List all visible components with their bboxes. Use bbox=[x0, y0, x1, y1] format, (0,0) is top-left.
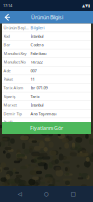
staticText: Profil bbox=[3, 119, 12, 125]
staticText: Ürünün Bilgisi bbox=[31, 14, 63, 21]
staticText: Tarix Alom bbox=[3, 85, 23, 90]
button[interactable]: Fiyatlarını Gör bbox=[2, 122, 91, 134]
staticText: Codera bbox=[30, 42, 43, 47]
button[interactable]: Back bbox=[1, 11, 13, 23]
button[interactable]: Home bbox=[39, 187, 53, 201]
staticText: Fiyatlarını Gör bbox=[30, 124, 63, 132]
staticText: Ana Taşınması bbox=[30, 111, 56, 116]
staticText: ○ bbox=[44, 191, 49, 197]
staticText: Manufact.Key bbox=[3, 51, 26, 56]
staticText: Manufact.No bbox=[3, 59, 25, 65]
staticText: Ürünün Başlığı bbox=[3, 25, 28, 30]
staticText: 17:14 bbox=[3, 3, 12, 8]
staticText: Itır 071.09 bbox=[30, 85, 47, 90]
staticText: □ bbox=[71, 191, 76, 197]
staticText: Demir Tip bbox=[3, 111, 21, 116]
staticText: Marxet bbox=[3, 102, 16, 108]
staticText: Paket bbox=[3, 76, 12, 82]
button[interactable]: Recent apps bbox=[66, 187, 80, 201]
staticText: Sipariş bbox=[3, 94, 15, 99]
staticText: ◁ bbox=[18, 191, 22, 197]
staticText: 147322 bbox=[30, 59, 42, 65]
staticText: Kod bbox=[3, 33, 9, 39]
staticText: Ade bbox=[3, 68, 10, 73]
staticText: Fabrikası bbox=[30, 51, 46, 56]
staticText: 11 bbox=[30, 76, 34, 82]
staticText: ▲▼▮ bbox=[82, 3, 90, 8]
staticText: Istanbul bbox=[30, 33, 43, 39]
button[interactable]: Back bbox=[13, 187, 27, 201]
staticText: Bilgileri bbox=[30, 25, 44, 30]
staticText: İstanbul bbox=[30, 102, 43, 108]
staticText: 007 bbox=[30, 68, 36, 73]
staticText: Tarix bbox=[30, 94, 39, 99]
staticText: Bar bbox=[3, 42, 10, 47]
